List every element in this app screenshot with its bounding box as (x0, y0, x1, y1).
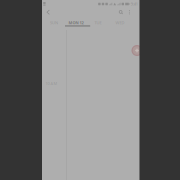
staticText: TUE (94, 20, 101, 25)
staticText: WED (115, 20, 124, 25)
staticText: SUN (50, 20, 58, 25)
button[interactable]: Back (44, 8, 53, 16)
button[interactable]: Create event (131, 45, 142, 56)
staticText: 10 AM (46, 81, 58, 86)
button[interactable]: SUN (43, 20, 65, 25)
button[interactable]: TUE (87, 20, 109, 25)
button[interactable]: More options (125, 8, 133, 16)
button[interactable]: Search (116, 8, 125, 16)
button[interactable]: WED (109, 20, 131, 25)
button[interactable]: MON 12 (65, 20, 87, 25)
staticText: MON 12 (68, 20, 83, 25)
staticText: 9:41 (131, 1, 138, 7)
